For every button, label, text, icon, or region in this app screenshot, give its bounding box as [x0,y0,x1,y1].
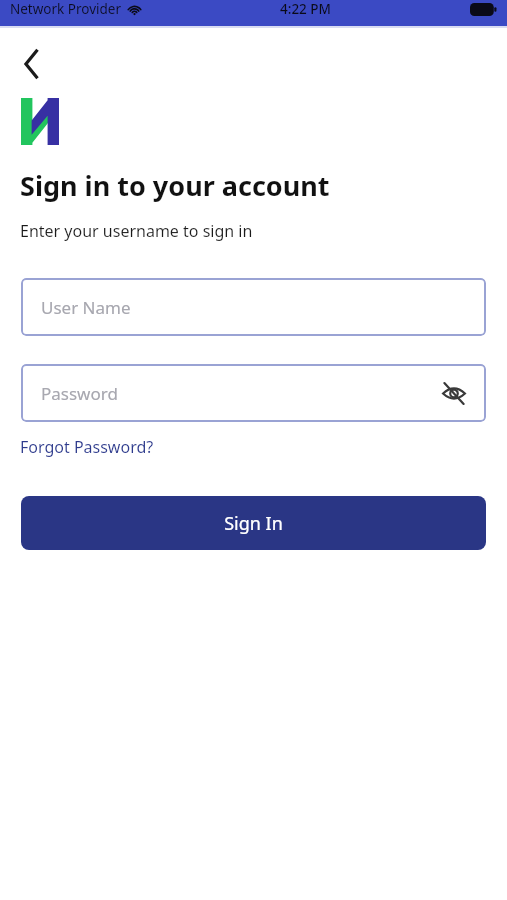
button[interactable]: User Name [21,278,486,336]
staticText: Password [41,382,118,405]
button[interactable]: Back [10,42,54,86]
button[interactable]: Sign In [21,496,486,550]
staticText: Forgot Password? [20,436,154,458]
staticText: Enter your username to sign in [20,220,253,242]
button[interactable]: Forgot Password? [20,436,154,458]
staticText: Network Provider [10,0,122,18]
button[interactable]: Show password [436,375,472,411]
button[interactable]: Password [21,364,486,422]
staticText: Sign In [224,511,283,536]
staticText: 4:22 PM [280,0,331,18]
staticText: Sign in to your account [20,167,330,204]
staticText: User Name [41,296,131,319]
